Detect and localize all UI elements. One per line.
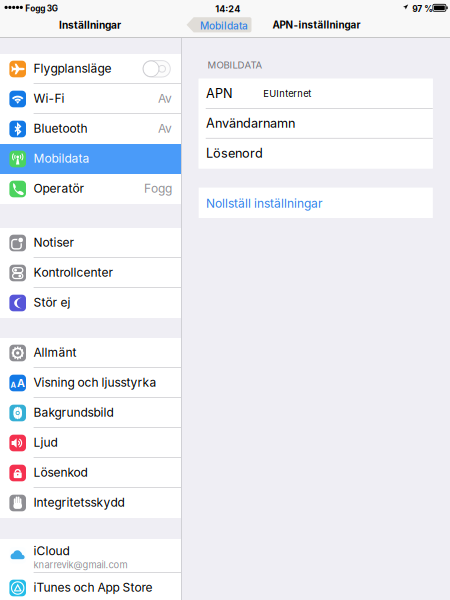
- staticText: Ljud: [34, 435, 58, 450]
- staticText: Av: [158, 91, 172, 106]
- staticText: iCloud: [34, 544, 70, 558]
- staticText: EUInternet: [263, 88, 311, 99]
- staticText: knarrevik@gmail.com: [34, 559, 128, 570]
- button[interactable]: iCloud: [0, 539, 181, 573]
- staticText: Mobildata: [200, 20, 248, 32]
- staticText: Flygplansläge: [34, 61, 112, 76]
- staticText: Fogg: [25, 4, 45, 14]
- staticText: iTunes och App Store: [34, 580, 153, 595]
- button[interactable]: Notiser: [0, 228, 181, 258]
- staticText: Bakgrundsbild: [34, 405, 114, 420]
- button[interactable]: Integritetsskydd: [0, 488, 181, 518]
- button[interactable]: Allmänt: [0, 338, 181, 368]
- button[interactable]: Stör ej: [0, 288, 181, 318]
- staticText: Inställningar: [59, 19, 121, 31]
- button[interactable]: Flygplansläge: [0, 54, 181, 84]
- staticText: Lösenord: [206, 145, 263, 161]
- button[interactable]: APN: [199, 79, 433, 109]
- staticText: Wi-Fi: [34, 91, 65, 106]
- staticText: Lösenkod: [34, 465, 88, 480]
- button[interactable]: A: [0, 368, 181, 398]
- button[interactable]: Bakgrundsbild: [0, 398, 181, 428]
- staticText: APN-inställningar: [272, 19, 360, 31]
- staticText: Fogg: [144, 181, 172, 196]
- staticText: A: [17, 376, 25, 389]
- staticText: Operatör: [34, 181, 85, 196]
- button[interactable]: Lösenord: [199, 138, 433, 168]
- staticText: A: [10, 380, 16, 389]
- button[interactable]: Ljud: [0, 428, 181, 458]
- button[interactable]: Nollställ inställningar: [199, 188, 433, 218]
- staticText: Bluetooth: [34, 121, 88, 136]
- button[interactable]: Mobildata: [0, 144, 181, 174]
- staticText: Stör ej: [34, 295, 71, 310]
- button[interactable]: Mobildata: [186, 17, 251, 32]
- staticText: Visning och ljusstyrka: [34, 375, 157, 390]
- button[interactable]: Kontrollcenter: [0, 258, 181, 288]
- staticText: Kontrollcenter: [34, 265, 114, 280]
- staticText: 14:24: [215, 3, 240, 14]
- staticText: MOBILDATA: [208, 59, 263, 71]
- button[interactable]: Användarnamn: [199, 109, 433, 138]
- staticText: Mobildata: [34, 151, 90, 166]
- staticText: Allmänt: [34, 345, 77, 360]
- button[interactable]: Operatör: [0, 174, 181, 204]
- staticText: Integritetsskydd: [34, 495, 125, 510]
- staticText: 3G: [47, 4, 58, 14]
- staticText: APN: [206, 86, 233, 101]
- button[interactable]: Lösenkod: [0, 458, 181, 488]
- staticText: Notiser: [34, 235, 75, 250]
- staticText: Nollställ inställningar: [206, 196, 323, 210]
- staticText: Användarnamn: [206, 116, 295, 131]
- button[interactable]: iTunes och App Store: [0, 573, 181, 600]
- staticText: Av: [158, 121, 172, 136]
- button[interactable]: Wi-Fi: [0, 84, 181, 114]
- staticText: 97 %: [412, 4, 433, 14]
- button[interactable]: Bluetooth: [0, 114, 181, 144]
- button[interactable]: Flygplansläge, off: [143, 61, 170, 77]
